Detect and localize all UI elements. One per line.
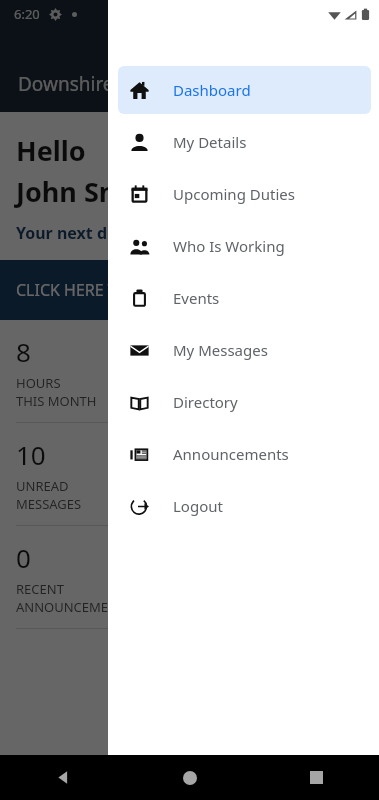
staticText: RECENT <box>16 580 64 598</box>
staticText: Your next duty is Monday <box>16 222 219 244</box>
button[interactable]: Recent apps <box>253 755 379 800</box>
staticText: Events <box>173 288 220 308</box>
staticText: John Smith <box>16 173 163 210</box>
staticText: Hello <box>16 132 86 169</box>
staticText: My Details <box>173 132 247 152</box>
button[interactable]: My Details <box>118 118 371 166</box>
staticText: Upcoming Duties <box>173 184 295 204</box>
staticText: MESSAGES <box>16 495 82 513</box>
staticText: Logout <box>173 496 223 516</box>
staticText: THIS MONTH <box>16 392 97 410</box>
staticText: Dashboard <box>173 80 251 100</box>
button[interactable]: Upcoming Duties <box>118 170 371 218</box>
button[interactable]: Directory <box>118 378 371 426</box>
button[interactable]: Home <box>127 755 253 800</box>
staticText: 10 <box>16 437 46 472</box>
button[interactable]: Logout <box>118 482 371 530</box>
staticText: Announcements <box>173 444 289 464</box>
staticText: 6:20 <box>14 5 40 23</box>
staticText: 8 <box>16 334 31 369</box>
staticText: My Messages <box>173 340 268 360</box>
staticText: ANNOUNCEMENTS <box>16 598 133 616</box>
button[interactable]: Events <box>118 274 371 322</box>
button[interactable]: My Messages <box>118 326 371 374</box>
staticText: Downshire Hospital <box>18 71 193 97</box>
button[interactable]: Back <box>0 755 127 800</box>
button[interactable]: Who Is Working <box>118 222 371 270</box>
staticText: 0 <box>16 540 31 575</box>
staticText: UNREAD <box>16 477 69 495</box>
button[interactable]: Dashboard <box>118 66 371 114</box>
staticText: CLICK HERE TO VIEW <box>16 279 172 301</box>
staticText: Who Is Working <box>173 236 285 256</box>
staticText: HOURS <box>16 374 61 392</box>
staticText: Directory <box>173 392 238 412</box>
button[interactable]: CLICK HERE TO VIEW <box>0 260 379 320</box>
button[interactable]: Announcements <box>118 430 371 478</box>
